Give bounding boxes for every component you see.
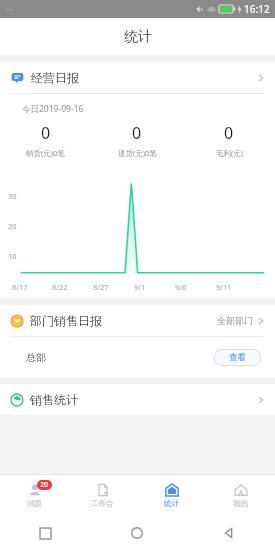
staticText: 20 <box>40 480 49 490</box>
staticText: 查看 <box>229 352 246 363</box>
button[interactable]: 部门销售日报 <box>0 305 275 336</box>
staticText: 经营日报 <box>31 70 79 85</box>
staticText: 10 <box>8 251 17 261</box>
button[interactable]: 经营日报 <box>0 62 275 93</box>
staticText: 销货(元)0笔 <box>26 148 65 158</box>
staticText: 部门销售日报 <box>30 313 102 328</box>
staticText: 我的 <box>233 499 248 508</box>
staticText: 全部部门 <box>217 315 253 326</box>
staticText: ··· <box>6 4 13 15</box>
button[interactable]: 20 <box>0 475 68 516</box>
button[interactable]: 查看 <box>214 349 261 366</box>
staticText: 统计 <box>164 499 179 508</box>
button[interactable]: Home <box>91 527 183 539</box>
staticText: 8/27 <box>93 282 109 292</box>
button[interactable]: Back <box>183 527 275 539</box>
staticText: 30 <box>8 191 17 201</box>
staticText: 9/1 <box>134 282 146 292</box>
staticText: 8/22 <box>52 282 68 292</box>
staticText: 0 <box>132 122 142 144</box>
staticText: 9/11 <box>216 282 232 292</box>
staticText: 今日2019-09-16 <box>22 103 84 115</box>
button[interactable]: 工作台 <box>68 475 137 516</box>
button[interactable]: 我的 <box>206 475 275 516</box>
button[interactable]: 统计 <box>137 475 206 516</box>
staticText: 9/6 <box>175 282 187 292</box>
staticText: 总部 <box>26 351 46 364</box>
staticText: 0 <box>41 122 51 144</box>
staticText: 工作台 <box>91 499 114 508</box>
staticText: 统计 <box>124 28 152 46</box>
staticText: 16:12 <box>244 2 270 16</box>
staticText: 销售统计 <box>30 392 78 407</box>
staticText: 20 <box>8 221 17 231</box>
button[interactable]: 销售统计 <box>0 384 275 415</box>
staticText: 0 <box>224 122 234 144</box>
staticText: 毛利(元) <box>216 148 243 158</box>
button[interactable]: Recents <box>0 528 91 539</box>
staticText: 消息 <box>27 499 42 508</box>
staticText: 退货(元)0笔 <box>118 148 157 158</box>
staticText: 8/17 <box>12 282 28 292</box>
